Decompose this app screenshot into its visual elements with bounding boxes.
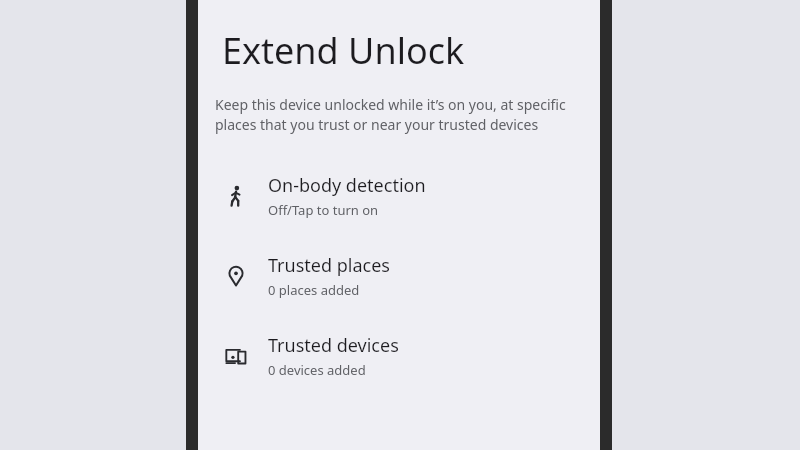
other: On-body detection [220,180,252,212]
staticText: Keep this device unlocked while it’s on … [215,95,570,134]
button[interactable]: Trusted places [198,236,600,316]
button[interactable]: Trusted devices [198,316,600,396]
button[interactable]: On-body detection [198,156,600,236]
staticText: 0 places added [268,281,360,299]
staticText: 0 devices added [268,361,366,379]
staticText: Trusted places [268,253,390,278]
other: Trusted devices [220,340,252,372]
other: Trusted places [220,260,252,292]
staticText: Off/Tap to turn on [268,201,379,219]
staticText: Extend Unlock [222,26,465,75]
staticText: On-body detection [268,173,426,198]
staticText: Trusted devices [268,333,399,358]
